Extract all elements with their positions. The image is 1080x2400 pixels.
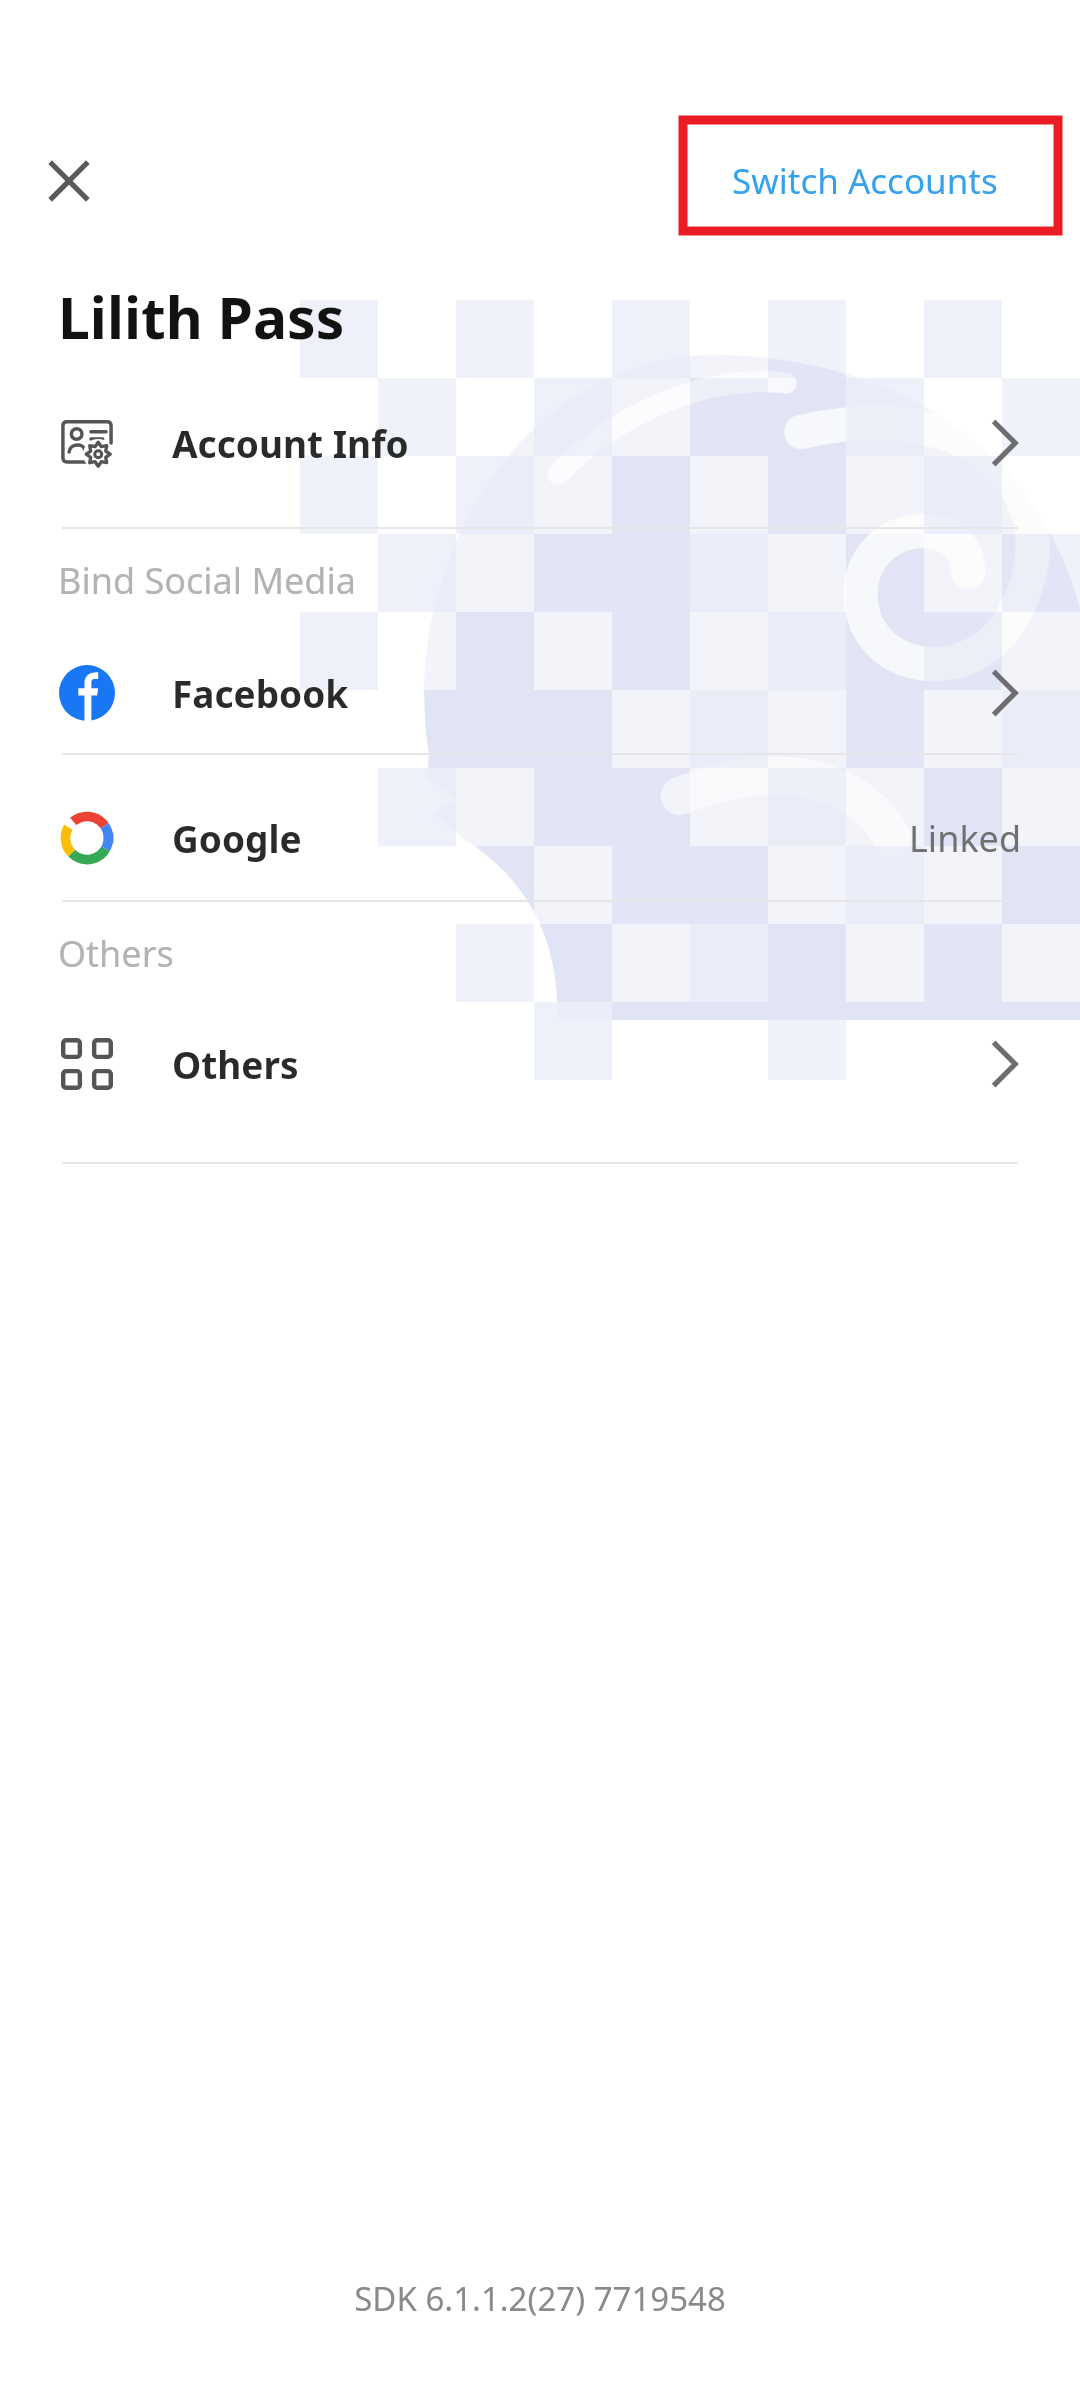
staticText: Google (172, 813, 302, 863)
staticText: Others (58, 929, 174, 978)
staticText: Linked (909, 814, 1022, 863)
staticText: SDK 6.1.1.2(27) 7719548 (354, 2276, 726, 2321)
button[interactable]: Close (30, 142, 108, 220)
staticText: Lilith Pass (58, 278, 345, 356)
staticText: Switch Accounts (732, 157, 998, 205)
button[interactable]: Google (0, 790, 1080, 886)
button[interactable]: Facebook (0, 645, 1080, 741)
button[interactable]: Switch Accounts (700, 142, 1030, 220)
staticText: Bind Social Media (58, 556, 356, 605)
staticText: Facebook (172, 668, 349, 718)
button[interactable]: Account Info (0, 395, 1080, 491)
staticText: Account Info (172, 418, 409, 468)
staticText: Others (172, 1039, 299, 1089)
button[interactable]: Others (0, 1016, 1080, 1112)
